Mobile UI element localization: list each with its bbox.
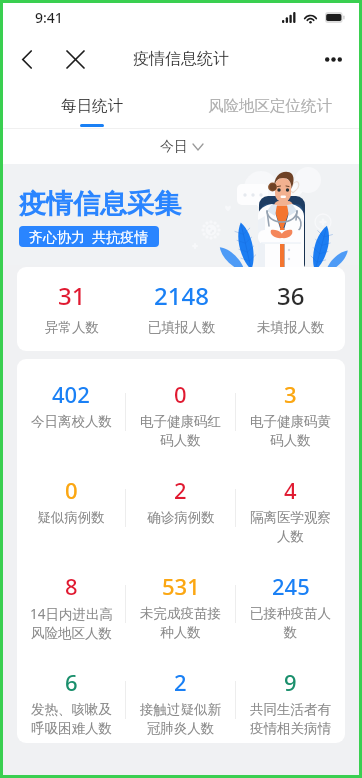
button[interactable]: 402 xyxy=(17,359,125,455)
staticText: 疫情信息统计 xyxy=(133,49,229,69)
button[interactable]: 6 xyxy=(17,647,125,743)
button[interactable]: 风险地区定位统计 xyxy=(181,87,359,129)
staticText: 245 xyxy=(272,571,310,601)
button[interactable]: 2 xyxy=(126,647,235,743)
staticText: 未填报人数 xyxy=(257,319,325,336)
staticText: 共同生活者有 疫情相关病情 xyxy=(250,701,331,737)
staticText: 0 xyxy=(65,475,78,505)
staticText: 531 xyxy=(162,571,200,601)
button[interactable]: 531 xyxy=(126,551,235,647)
staticText: 9:41 xyxy=(35,8,63,27)
staticText: 2148 xyxy=(154,279,209,312)
button[interactable]: More options xyxy=(315,41,351,77)
staticText: 今日 xyxy=(160,138,188,156)
staticText: 4 xyxy=(284,475,297,505)
staticText: 8 xyxy=(65,571,78,601)
staticText: 每日统计 xyxy=(61,96,123,116)
staticText: 电子健康码黄 码人数 xyxy=(250,413,331,449)
staticText: 2 xyxy=(174,475,187,505)
staticText: 已填报人数 xyxy=(148,319,216,336)
staticText: 未完成疫苗接 种人数 xyxy=(140,605,221,641)
staticText: 402 xyxy=(52,379,90,409)
button[interactable]: 2148 xyxy=(127,267,236,351)
button[interactable]: 36 xyxy=(236,267,345,351)
staticText: 36 xyxy=(277,279,305,312)
staticText: 今日离校人数 xyxy=(31,413,112,430)
staticText: 6 xyxy=(65,667,78,697)
button[interactable]: 245 xyxy=(236,551,345,647)
staticText: 9 xyxy=(284,667,297,697)
staticText: 已接种疫苗人 数 xyxy=(250,605,331,641)
staticText: 接触过疑似新 冠肺炎人数 xyxy=(140,701,221,737)
staticText: 风险地区定位统计 xyxy=(208,96,332,116)
button[interactable]: 今日 xyxy=(160,138,203,156)
button[interactable]: 2 xyxy=(126,455,235,551)
staticText: 隔离医学观察 人数 xyxy=(250,509,331,545)
button[interactable]: 4 xyxy=(236,455,345,551)
button[interactable]: 0 xyxy=(126,359,235,455)
staticText: 发热、咳嗽及 呼吸困难人数 xyxy=(31,701,112,737)
button[interactable]: 31 xyxy=(17,267,127,351)
staticText: 14日内进出高 风险地区人数 xyxy=(30,605,113,642)
button[interactable]: 8 xyxy=(17,551,125,647)
staticText: 31 xyxy=(58,279,86,312)
staticText: 疑似病例数 xyxy=(37,509,105,526)
button[interactable]: 0 xyxy=(17,455,125,551)
staticText: 异常人数 xyxy=(45,319,99,336)
button[interactable]: 9 xyxy=(236,647,345,743)
staticText: 疫情信息采集 xyxy=(19,187,181,221)
staticText: 齐心协力 共抗疫情 xyxy=(29,227,149,246)
staticText: 0 xyxy=(174,379,187,409)
button[interactable]: 3 xyxy=(236,359,345,455)
button[interactable]: Back xyxy=(10,42,44,76)
staticText: 3 xyxy=(284,379,297,409)
button[interactable]: 每日统计 xyxy=(3,87,181,129)
staticText: 确诊病例数 xyxy=(147,509,215,526)
staticText: 2 xyxy=(174,667,187,697)
staticText: 电子健康码红 码人数 xyxy=(140,413,221,449)
button[interactable]: Close xyxy=(58,42,92,76)
